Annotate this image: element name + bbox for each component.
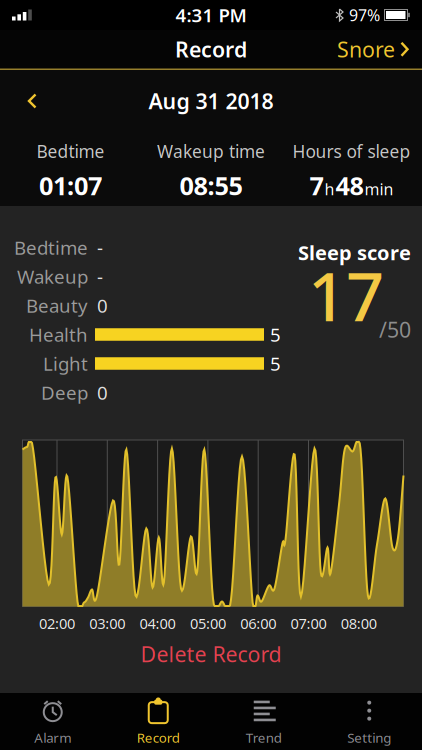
staticText: /50 <box>379 315 411 344</box>
button[interactable]: Setting <box>316 693 422 750</box>
staticText: 0 <box>97 293 108 318</box>
staticText: Deep <box>41 380 88 405</box>
staticText: Record <box>137 729 180 746</box>
staticText: Aug 31 2018 <box>148 87 273 115</box>
staticText: 05:00 <box>190 613 226 633</box>
button[interactable]: Back <box>0 93 38 109</box>
staticText: Delete Record <box>140 640 281 668</box>
staticText: Setting <box>347 729 391 746</box>
staticText: Sleep score <box>298 239 411 266</box>
staticText: Snore <box>337 35 395 63</box>
staticText: Wakeup <box>17 264 88 289</box>
staticText: Hours of sleep <box>292 140 410 163</box>
staticText: 07:00 <box>290 613 326 633</box>
staticText: 01:07 <box>39 169 102 202</box>
button[interactable]: Delete Record <box>0 639 422 669</box>
staticText: Health <box>29 322 88 347</box>
staticText: h <box>324 178 334 200</box>
staticText: Trend <box>246 729 282 746</box>
staticText: Wakeup time <box>157 140 265 163</box>
staticText: 02:00 <box>39 613 75 633</box>
button[interactable]: Snore <box>337 35 422 63</box>
button[interactable]: Record <box>105 693 211 750</box>
staticText: 97% <box>349 4 380 26</box>
staticText: - <box>97 235 103 260</box>
staticText: min <box>364 178 393 200</box>
staticText: 4:31 PM <box>175 3 246 27</box>
staticText: - <box>97 264 103 289</box>
staticText: 06:00 <box>240 613 276 633</box>
staticText: 03:00 <box>89 613 125 633</box>
staticText: Beauty <box>26 293 88 318</box>
staticText: 5 <box>270 351 281 376</box>
button[interactable]: Trend <box>211 693 316 750</box>
staticText: Bedtime <box>36 140 104 163</box>
staticText: Light <box>43 351 88 376</box>
staticText: Alarm <box>34 729 71 746</box>
staticText: 48 <box>335 169 363 202</box>
staticText: 08:55 <box>179 169 242 202</box>
staticText: 0 <box>97 380 108 405</box>
staticText: 5 <box>270 322 281 347</box>
staticText: 04:00 <box>140 613 176 633</box>
staticText: Bedtime <box>14 235 88 260</box>
staticText: Record <box>175 35 247 63</box>
staticText: 08:00 <box>341 613 377 633</box>
staticText: 17 <box>308 251 384 340</box>
staticText: 7 <box>309 169 323 202</box>
button[interactable]: Alarm <box>0 693 105 750</box>
